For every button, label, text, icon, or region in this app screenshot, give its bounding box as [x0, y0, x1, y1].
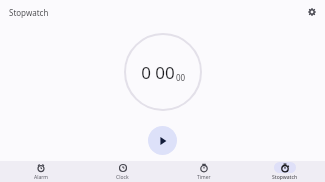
button[interactable]: Alarm — [0, 161, 82, 182]
staticText: 00 — [176, 72, 186, 83]
button[interactable]: Settings — [304, 4, 320, 20]
button[interactable]: Clock — [82, 161, 163, 182]
button[interactable]: Start — [148, 126, 177, 155]
button[interactable]: Stopwatch — [244, 161, 325, 182]
staticText: Stopwatch — [9, 7, 49, 18]
staticText: Stopwatch — [272, 174, 298, 181]
button[interactable]: Timer — [163, 161, 244, 182]
staticText: 0 00 — [141, 61, 175, 84]
staticText: Clock — [116, 174, 129, 181]
staticText: Alarm — [34, 174, 49, 181]
staticText: Timer — [197, 174, 211, 181]
